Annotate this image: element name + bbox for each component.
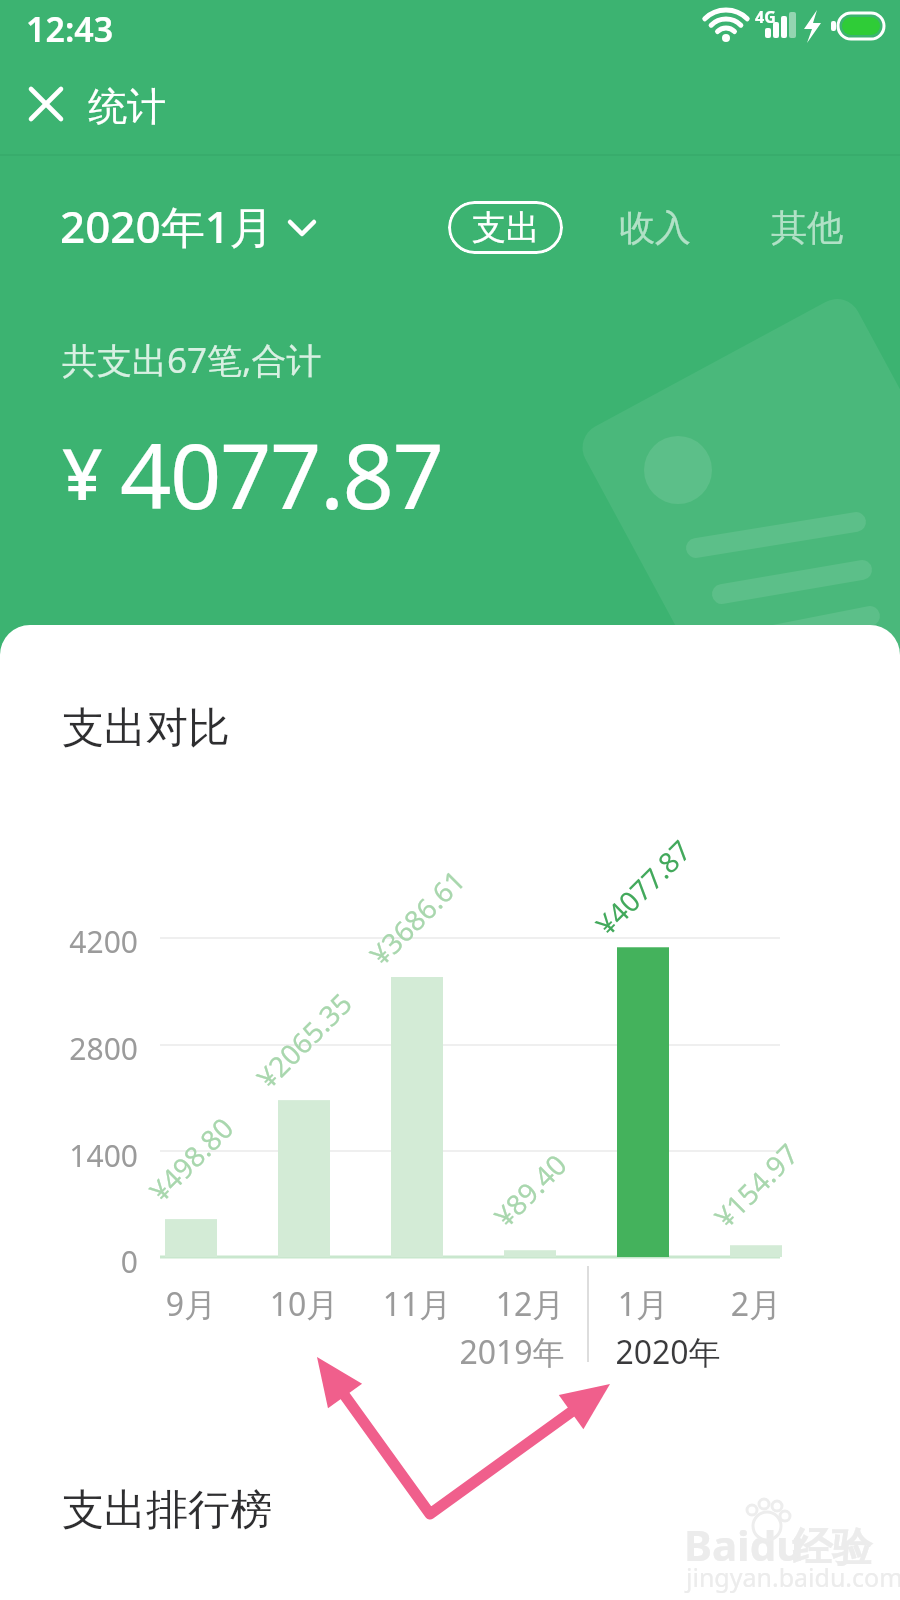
button[interactable]: 其他 bbox=[752, 201, 862, 254]
staticText: 11月 bbox=[372, 1282, 462, 1326]
staticText: 经验 bbox=[792, 1522, 872, 1572]
staticText: ¥498.80 bbox=[141, 1109, 241, 1209]
staticText: ¥89.40 bbox=[485, 1145, 575, 1235]
staticText: 支出排行榜 bbox=[62, 1484, 272, 1537]
staticText: 收入 bbox=[619, 205, 691, 250]
staticText: 0 bbox=[40, 1241, 138, 1282]
staticText: 9月 bbox=[146, 1282, 236, 1326]
staticText: 2800 bbox=[40, 1028, 138, 1069]
staticText: 统计 bbox=[88, 82, 166, 131]
staticText: ¥3686.61 bbox=[361, 861, 473, 973]
button[interactable]: 支出 bbox=[448, 201, 563, 254]
staticText: 4077.87 bbox=[120, 413, 443, 536]
staticText: Baidu bbox=[684, 1516, 804, 1573]
staticText: 10月 bbox=[259, 1282, 349, 1326]
staticText: 4200 bbox=[40, 921, 138, 962]
staticText: 其他 bbox=[771, 205, 843, 250]
staticText: ¥ bbox=[62, 424, 103, 521]
staticText: 2019年 bbox=[452, 1330, 572, 1374]
button[interactable]: 2020年1月 bbox=[60, 196, 304, 256]
staticText: 支出对比 bbox=[62, 702, 230, 755]
staticText: 2020年1月 bbox=[60, 196, 274, 256]
staticText: ¥4077.87 bbox=[587, 831, 699, 943]
staticText: 12月 bbox=[485, 1282, 575, 1326]
staticText: ¥2065.35 bbox=[248, 984, 360, 1096]
staticText: 2020年 bbox=[608, 1330, 728, 1374]
button[interactable]: 收入 bbox=[600, 201, 710, 254]
staticText: 1月 bbox=[598, 1282, 688, 1326]
staticText: 支出 bbox=[472, 206, 540, 249]
staticText: 1400 bbox=[40, 1135, 138, 1176]
staticText: 共支出67笔,合计 bbox=[62, 336, 322, 384]
button[interactable] bbox=[14, 72, 78, 136]
staticText: jingyan.baidu.com bbox=[686, 1560, 900, 1594]
staticText: ¥154.97 bbox=[706, 1135, 806, 1235]
staticText: 4G bbox=[755, 6, 776, 28]
staticText: 12:43 bbox=[26, 6, 114, 52]
staticText: 2月 bbox=[711, 1282, 801, 1326]
